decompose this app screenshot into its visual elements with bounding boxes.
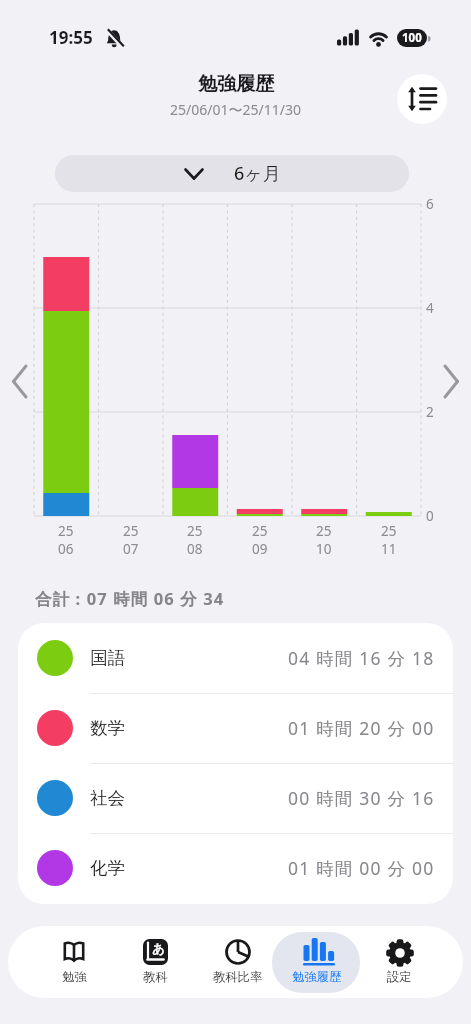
button[interactable]: 国語 bbox=[18, 623, 453, 693]
staticText: 00 時間 30 分 16 bbox=[288, 786, 435, 810]
staticText: 25 bbox=[187, 522, 203, 540]
staticText: 化学 bbox=[90, 857, 125, 879]
staticText: 04 時間 16 分 18 bbox=[288, 646, 435, 670]
staticText: 社会 bbox=[90, 787, 125, 809]
button[interactable]: 勉強履歴 bbox=[271, 938, 363, 996]
staticText: 11 bbox=[381, 540, 397, 558]
staticText: 100 bbox=[402, 30, 422, 46]
button[interactable]: 化学 bbox=[18, 833, 453, 903]
staticText: 教科 bbox=[143, 969, 168, 984]
button[interactable]: 数学 bbox=[18, 693, 453, 763]
button[interactable] bbox=[397, 74, 447, 124]
staticText: 25 bbox=[381, 522, 397, 540]
staticText: 6 bbox=[426, 195, 434, 213]
button[interactable]: 社会 bbox=[18, 763, 453, 833]
staticText: 25 bbox=[316, 522, 332, 540]
staticText: 勉強 bbox=[62, 969, 87, 984]
button[interactable]: 勉強 bbox=[28, 938, 120, 996]
staticText: 19:55 bbox=[49, 26, 93, 49]
staticText: 教科比率 bbox=[213, 969, 263, 984]
staticText: あ bbox=[152, 941, 165, 957]
button[interactable]: あ bbox=[109, 938, 201, 996]
staticText: 国語 bbox=[90, 647, 125, 669]
staticText: 数学 bbox=[90, 717, 125, 739]
staticText: 08 bbox=[187, 540, 203, 558]
staticText: 合計 : 07 時間 06 分 34 bbox=[35, 587, 225, 610]
staticText: 01 時間 20 分 00 bbox=[288, 716, 435, 740]
staticText: 設定 bbox=[387, 969, 412, 984]
staticText: 25 bbox=[123, 522, 139, 540]
staticText: 07 bbox=[123, 540, 139, 558]
staticText: 2 bbox=[426, 403, 434, 421]
staticText: 勉強履歴 bbox=[292, 969, 342, 984]
button[interactable]: 教科比率 bbox=[192, 938, 284, 996]
staticText: 勉強履歴 bbox=[198, 72, 274, 96]
staticText: 01 時間 00 分 00 bbox=[288, 856, 435, 880]
staticText: 06 bbox=[58, 540, 74, 558]
staticText: 25 bbox=[252, 522, 268, 540]
staticText: 10 bbox=[316, 540, 332, 558]
staticText: 6ヶ月 bbox=[234, 161, 281, 186]
staticText: 25 bbox=[58, 522, 74, 540]
staticText: 0 bbox=[426, 507, 434, 525]
button[interactable]: 設定 bbox=[353, 938, 445, 996]
button[interactable]: 6ヶ月 bbox=[55, 155, 409, 192]
staticText: 4 bbox=[426, 299, 434, 317]
staticText: 09 bbox=[252, 540, 268, 558]
staticText: 25/06/01〜25/11/30 bbox=[170, 100, 301, 119]
